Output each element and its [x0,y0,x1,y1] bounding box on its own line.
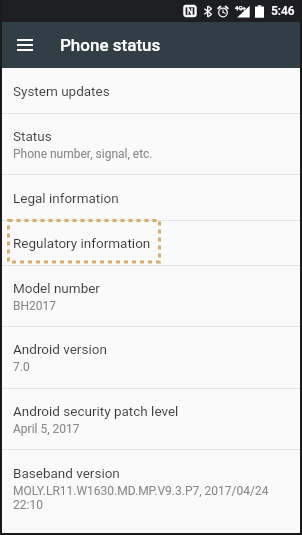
button[interactable]: Android security patch level [2,389,300,449]
staticText: Status [13,128,52,144]
staticText: BH2017 [13,299,57,313]
staticText: Model number [13,280,100,296]
staticText: Phone status [60,35,161,55]
staticText: Regulatory information [13,235,151,251]
button[interactable]: Open navigation drawer [2,22,47,68]
staticText: Android security patch level [13,403,179,419]
button[interactable]: Model number [2,266,300,326]
staticText: MOLY.LR11.W1630.MD.MP.V9.3.P7, 2017/04/2… [13,484,269,512]
button[interactable]: System updates [2,68,300,113]
staticText: Baseband version [13,465,120,481]
staticText: System updates [13,83,110,99]
button[interactable]: Android version [2,327,300,388]
button[interactable]: Legal information [2,175,300,220]
button[interactable]: Status [2,114,300,174]
staticText: 7.0 [13,360,30,374]
staticText: Legal information [13,190,119,206]
staticText: 5:46 [271,4,295,18]
button[interactable]: Baseband version [2,450,300,527]
staticText: Android version [13,341,107,357]
staticText: Phone number, signal, etc. [13,147,153,161]
button[interactable]: Regulatory information [2,221,300,265]
staticText: April 5, 2017 [13,422,80,436]
staticText: 4G+ [235,4,246,11]
